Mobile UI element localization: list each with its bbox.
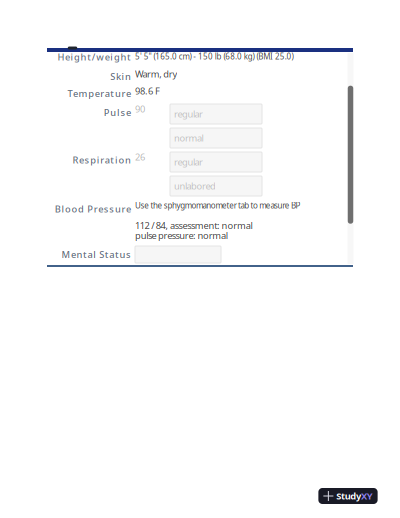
staticText: unlabored (174, 180, 216, 192)
staticText: 26 (135, 151, 145, 163)
button[interactable]: normal (170, 128, 262, 148)
button[interactable]: unlabored (170, 176, 262, 196)
staticText: XY (361, 490, 373, 502)
staticText: regular (174, 108, 203, 120)
staticText: Study (336, 490, 361, 502)
staticText: 98.6 F (135, 85, 160, 97)
staticText: 5' 5" (165.0 cm) - 150 lb (68.0 kg) (BMI… (135, 51, 293, 62)
staticText: Temperature (67, 87, 131, 100)
staticText: Respiration (72, 154, 131, 166)
staticText: Pulse (104, 106, 131, 119)
button[interactable]: regular (170, 104, 262, 124)
staticText: 112 / 84, assessment: normal (135, 219, 253, 232)
button[interactable] (135, 246, 221, 263)
staticText: Height/weight (57, 51, 131, 63)
button[interactable]: regular (170, 152, 262, 172)
staticText: Use the sphygmomanometer tab to measure … (135, 200, 301, 211)
staticText: pulse pressure: normal (135, 229, 228, 242)
staticText: Mental Status (61, 248, 131, 261)
staticText: Skin (110, 70, 131, 83)
staticText: normal (174, 132, 203, 144)
button[interactable]: StudyXY (318, 488, 378, 504)
staticText: Warm, dry (135, 68, 177, 80)
staticText: 90 (135, 103, 145, 115)
staticText: regular (174, 156, 203, 168)
staticText: Blood Pressure (55, 203, 131, 215)
